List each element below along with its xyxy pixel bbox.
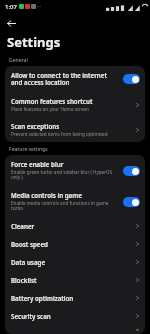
other: Open: [135, 240, 140, 248]
staticText: Enable media controls and functions in g…: [11, 200, 119, 212]
staticText: Force enable blur: [11, 160, 64, 168]
other: Open: [135, 101, 140, 109]
button[interactable]: Switch on: [123, 74, 140, 84]
other: Open: [135, 294, 140, 302]
staticText: Feature settings: [9, 146, 48, 153]
staticText: Security scan: [11, 312, 51, 320]
button[interactable]: Data usage: [5, 253, 145, 271]
button[interactable]: Cleaner: [5, 217, 145, 235]
button[interactable]: Blocklist: [5, 271, 145, 289]
staticText: Common features shortcut: [11, 97, 93, 105]
staticText: Cleaner: [11, 222, 35, 230]
button[interactable]: Switch on: [123, 166, 140, 176]
other: Open: [135, 312, 140, 320]
staticText: 1:07: [5, 3, 17, 11]
button[interactable]: Back: [4, 16, 19, 31]
button[interactable]: SIM security: [5, 325, 145, 334]
other: Open: [135, 258, 140, 266]
button[interactable]: Scan exceptions: [5, 117, 145, 142]
staticText: ···: [37, 3, 42, 10]
button[interactable]: Common features shortcut: [5, 92, 145, 117]
button[interactable]: Switch on: [123, 197, 140, 207]
other: Open: [135, 276, 140, 284]
button[interactable]: Battery optimization: [5, 289, 145, 307]
staticText: Prevent selected items from being optimi…: [11, 131, 108, 137]
staticText: Place features on your Home screen: [11, 106, 89, 112]
staticText: Enable green turbo and sidebar blur ( Hy…: [11, 169, 119, 181]
staticText: Battery optimization: [11, 294, 74, 302]
staticText: Blocklist: [11, 276, 37, 284]
staticText: Scan exceptions: [11, 122, 60, 130]
staticText: General: [9, 57, 28, 64]
button[interactable]: Security scan: [5, 307, 145, 325]
staticText: Media controls in game: [11, 191, 82, 199]
other: Open: [135, 126, 140, 134]
staticText: Data usage: [11, 258, 46, 266]
button[interactable]: Boost speed: [5, 235, 145, 253]
button[interactable]: Media controls in game: [5, 186, 145, 217]
staticText: Boost speed: [11, 240, 48, 248]
staticText: Settings: [7, 33, 61, 51]
other: Open: [135, 222, 140, 230]
button[interactable]: Force enable blur: [5, 155, 145, 186]
button[interactable]: Allow to connect to the internet and acc…: [5, 66, 145, 92]
staticText: Allow to connect to the internet and acc…: [11, 71, 119, 87]
